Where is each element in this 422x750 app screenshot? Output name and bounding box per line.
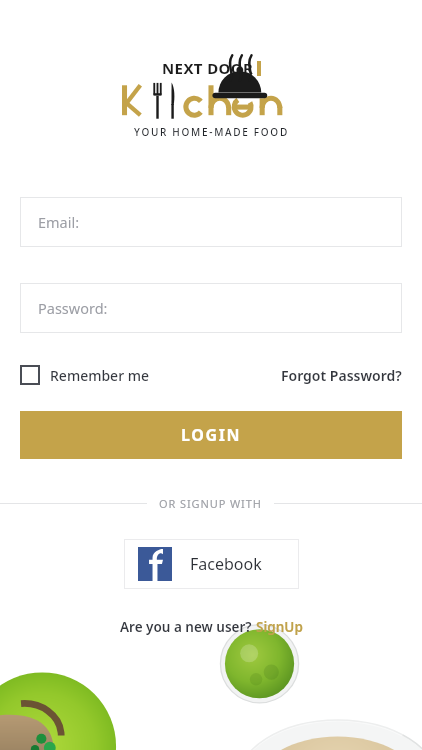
button[interactable]: Facebook	[124, 539, 299, 589]
staticText: Email:	[38, 212, 80, 232]
staticText: Password:	[38, 298, 108, 318]
staticText: NEXT DOOR	[162, 58, 254, 78]
staticText: OR SIGNUP WITH	[159, 496, 262, 511]
staticText: Facebook	[190, 553, 262, 575]
button[interactable]: Email:	[20, 197, 402, 247]
button[interactable]: LOGIN	[20, 411, 402, 459]
staticText: Forgot Password?	[281, 366, 402, 385]
button[interactable]: Remember me	[20, 365, 150, 385]
staticText: YOUR HOME-MADE FOOD	[134, 125, 289, 139]
button[interactable]: Password:	[20, 283, 402, 333]
staticText: Are you a new user?	[120, 618, 256, 636]
button[interactable]: SignUp	[256, 618, 303, 636]
staticText: LOGIN	[181, 424, 242, 446]
staticText: Remember me	[50, 366, 150, 385]
button[interactable]: Forgot Password?	[281, 366, 402, 385]
staticText: SignUp	[256, 618, 303, 636]
